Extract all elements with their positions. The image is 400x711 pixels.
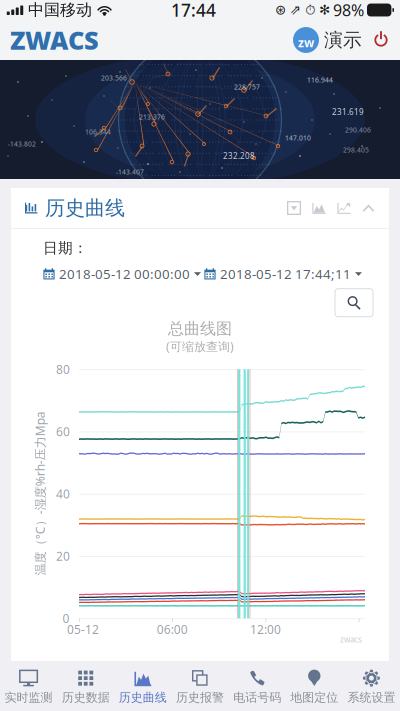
staticText: 231.619 (332, 107, 364, 117)
staticText: -143.802 (8, 140, 36, 148)
button[interactable]: 实时监测 (0, 663, 57, 710)
staticText: 232.208 (223, 151, 255, 161)
staticText: ZWACS (10, 23, 99, 57)
staticText: 2018-05-12 00:00:00 (59, 265, 190, 283)
button[interactable]: 2018-05-12 00:00:00 (43, 263, 201, 285)
button[interactable]: 地图定位 (286, 663, 343, 710)
staticText: 演示 (324, 28, 362, 51)
staticText: 203.566 (101, 74, 127, 82)
staticText: 147.010 (285, 134, 311, 142)
staticText: zw (298, 34, 314, 50)
button[interactable]: 筛选 (287, 201, 301, 215)
button[interactable]: zw (293, 24, 362, 56)
button[interactable]: 查询 (335, 289, 373, 317)
button[interactable]: 退出 (362, 30, 400, 50)
staticText: 20 (56, 548, 70, 564)
staticText: 温度（°C）-湿度%rh-压力Mpa (0, 485, 122, 501)
staticText: 电话号码 (233, 690, 281, 705)
staticText: 228.757 (234, 83, 260, 91)
staticText: 历史报警 (176, 690, 224, 705)
staticText: 40 (56, 486, 70, 502)
staticText: 60 (56, 424, 70, 439)
staticText: 历史数据 (62, 690, 110, 705)
staticText: zwacs (340, 634, 362, 645)
staticText: 总曲线图 (168, 319, 232, 338)
button[interactable]: 电话号码 (229, 663, 286, 710)
staticText: 地图定位 (290, 690, 338, 705)
staticText: 日期： (43, 239, 88, 257)
staticText: 98% (333, 0, 364, 21)
button[interactable]: 面积图 (301, 201, 326, 214)
staticText: 历史曲线 (45, 196, 125, 220)
button[interactable]: 历史数据 (57, 663, 114, 710)
staticText: 17:44 (171, 0, 216, 21)
staticText: (可缩放查询) (166, 338, 234, 354)
staticText: 213.376 (139, 113, 165, 121)
staticText: 106.344 (85, 128, 111, 136)
staticText: 298.405 (343, 146, 369, 154)
staticText: 系统设置 (347, 690, 395, 705)
button[interactable]: 收起 (351, 202, 375, 213)
staticText: ⊛ ⇗ ⏱ ✻ (275, 2, 330, 17)
button[interactable]: 历史曲线 (114, 663, 171, 710)
button[interactable]: 折线图 (326, 201, 351, 214)
button[interactable]: 历史报警 (171, 663, 228, 710)
staticText: 0 (62, 610, 69, 626)
button[interactable]: ZWACS (0, 19, 99, 61)
staticText: 05-12 (67, 621, 99, 637)
staticText: 116.944 (307, 76, 333, 84)
staticText: 2018-05-12 17:44;11 (220, 265, 351, 283)
staticText: 历史曲线 (119, 690, 167, 705)
button[interactable]: 系统设置 (343, 663, 400, 710)
button[interactable]: 2018-05-12 17:44;11 (204, 263, 362, 285)
staticText: 80 (56, 361, 70, 377)
staticText: 12:00 (250, 621, 281, 637)
staticText: 实时监测 (5, 690, 53, 705)
staticText: -143.407 (116, 168, 144, 176)
staticText: 中国移动 (28, 0, 92, 20)
staticText: 290.406 (345, 126, 371, 134)
staticText: 06:00 (157, 621, 188, 637)
